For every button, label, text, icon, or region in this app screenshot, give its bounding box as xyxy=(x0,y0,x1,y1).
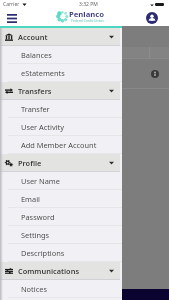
staticText: Profile xyxy=(18,158,42,168)
button[interactable]: User Name xyxy=(0,172,122,190)
button[interactable]: Transfers xyxy=(0,82,122,100)
button[interactable]: Balances xyxy=(0,46,122,64)
button[interactable]: User Activity xyxy=(0,118,122,136)
button[interactable]: Profile xyxy=(145,11,159,25)
button[interactable]: Add Member Account xyxy=(0,136,122,154)
staticText: Password xyxy=(21,212,55,222)
staticText: Descriptions xyxy=(21,248,65,258)
button[interactable]: eStatements xyxy=(0,64,122,82)
staticText: Settings xyxy=(21,230,50,240)
staticText: Email xyxy=(21,194,40,204)
button[interactable]: Email xyxy=(0,190,122,208)
staticText: 3:32 PM xyxy=(79,1,98,8)
button[interactable]: Transfer xyxy=(0,100,122,118)
staticText: Account xyxy=(18,32,48,42)
button[interactable]: Profile xyxy=(0,154,122,172)
staticText: eStatements xyxy=(21,68,65,78)
staticText: Penlanco xyxy=(69,9,105,19)
button[interactable]: Password xyxy=(0,208,122,226)
staticText: Balances xyxy=(21,50,52,60)
staticText: Transfer xyxy=(21,104,50,114)
staticText: Transfers xyxy=(18,86,52,96)
staticText: User Name xyxy=(21,176,60,186)
staticText: Add Member Account xyxy=(21,140,97,150)
button[interactable]: Descriptions xyxy=(0,244,122,262)
staticText: Communications xyxy=(18,266,80,276)
button[interactable]: Settings xyxy=(0,226,122,244)
staticText: Notices xyxy=(21,284,47,294)
button[interactable]: Communications xyxy=(0,262,122,280)
button[interactable]: Notices xyxy=(0,280,122,298)
staticText: Federal Credit Union xyxy=(71,18,104,23)
staticText: User Activity xyxy=(21,122,65,132)
button[interactable]: Open navigation menu xyxy=(4,10,20,26)
staticText: Carrier xyxy=(3,1,20,8)
button[interactable]: Account xyxy=(0,28,122,46)
